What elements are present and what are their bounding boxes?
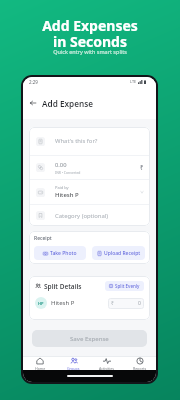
staticText: Quick entry with smart splits [53,48,127,55]
staticText: Split Evenly [115,283,140,289]
staticText: Add Expense [42,98,94,109]
staticText: Hitesh P [51,299,75,307]
staticText: Groups [67,366,80,370]
staticText: 0 [138,300,141,307]
button[interactable]: 0.00 [29,156,150,179]
staticText: ₹ [140,164,144,172]
staticText: Hitesh P [55,191,79,199]
staticText: Home [35,366,46,370]
staticText: HP [38,301,44,306]
button[interactable]: Upload Receipt [92,246,145,260]
button[interactable]: HP [35,297,144,309]
staticText: Take Photo [50,250,77,257]
button[interactable]: Groups [57,357,90,370]
staticText: Upload Receipt [104,250,141,257]
staticText: Save Expense [70,335,109,343]
button[interactable]: Home [23,357,57,370]
button[interactable]: Paid by [29,180,150,204]
staticText: 2:29 [29,79,38,85]
button[interactable]: Category (optional) [29,205,150,226]
button[interactable]: Activities [90,357,123,370]
staticText: 0.00 [55,161,67,169]
button[interactable]: ₹ [108,298,144,309]
button[interactable]: Reports [123,357,156,370]
staticText: Reports [133,366,147,370]
staticText: LTE [130,79,137,84]
button[interactable]: What's this for? [29,127,150,155]
button[interactable]: Split Evenly [105,281,144,291]
staticText: Category (optional) [55,212,109,220]
staticText: ₹ [111,300,114,307]
staticText: Split Details [44,282,82,291]
button[interactable]: Save Expense [32,330,147,347]
staticText: Receipt [34,235,52,242]
staticText: Add Expenses in Seconds [42,16,138,51]
staticText: INR • Converted [55,170,81,175]
button[interactable]: Back [27,97,39,109]
staticText: Activities [99,366,114,370]
staticText: What's this for? [55,137,98,145]
staticText: Paid by [55,185,69,190]
button[interactable]: Take Photo [34,246,86,260]
